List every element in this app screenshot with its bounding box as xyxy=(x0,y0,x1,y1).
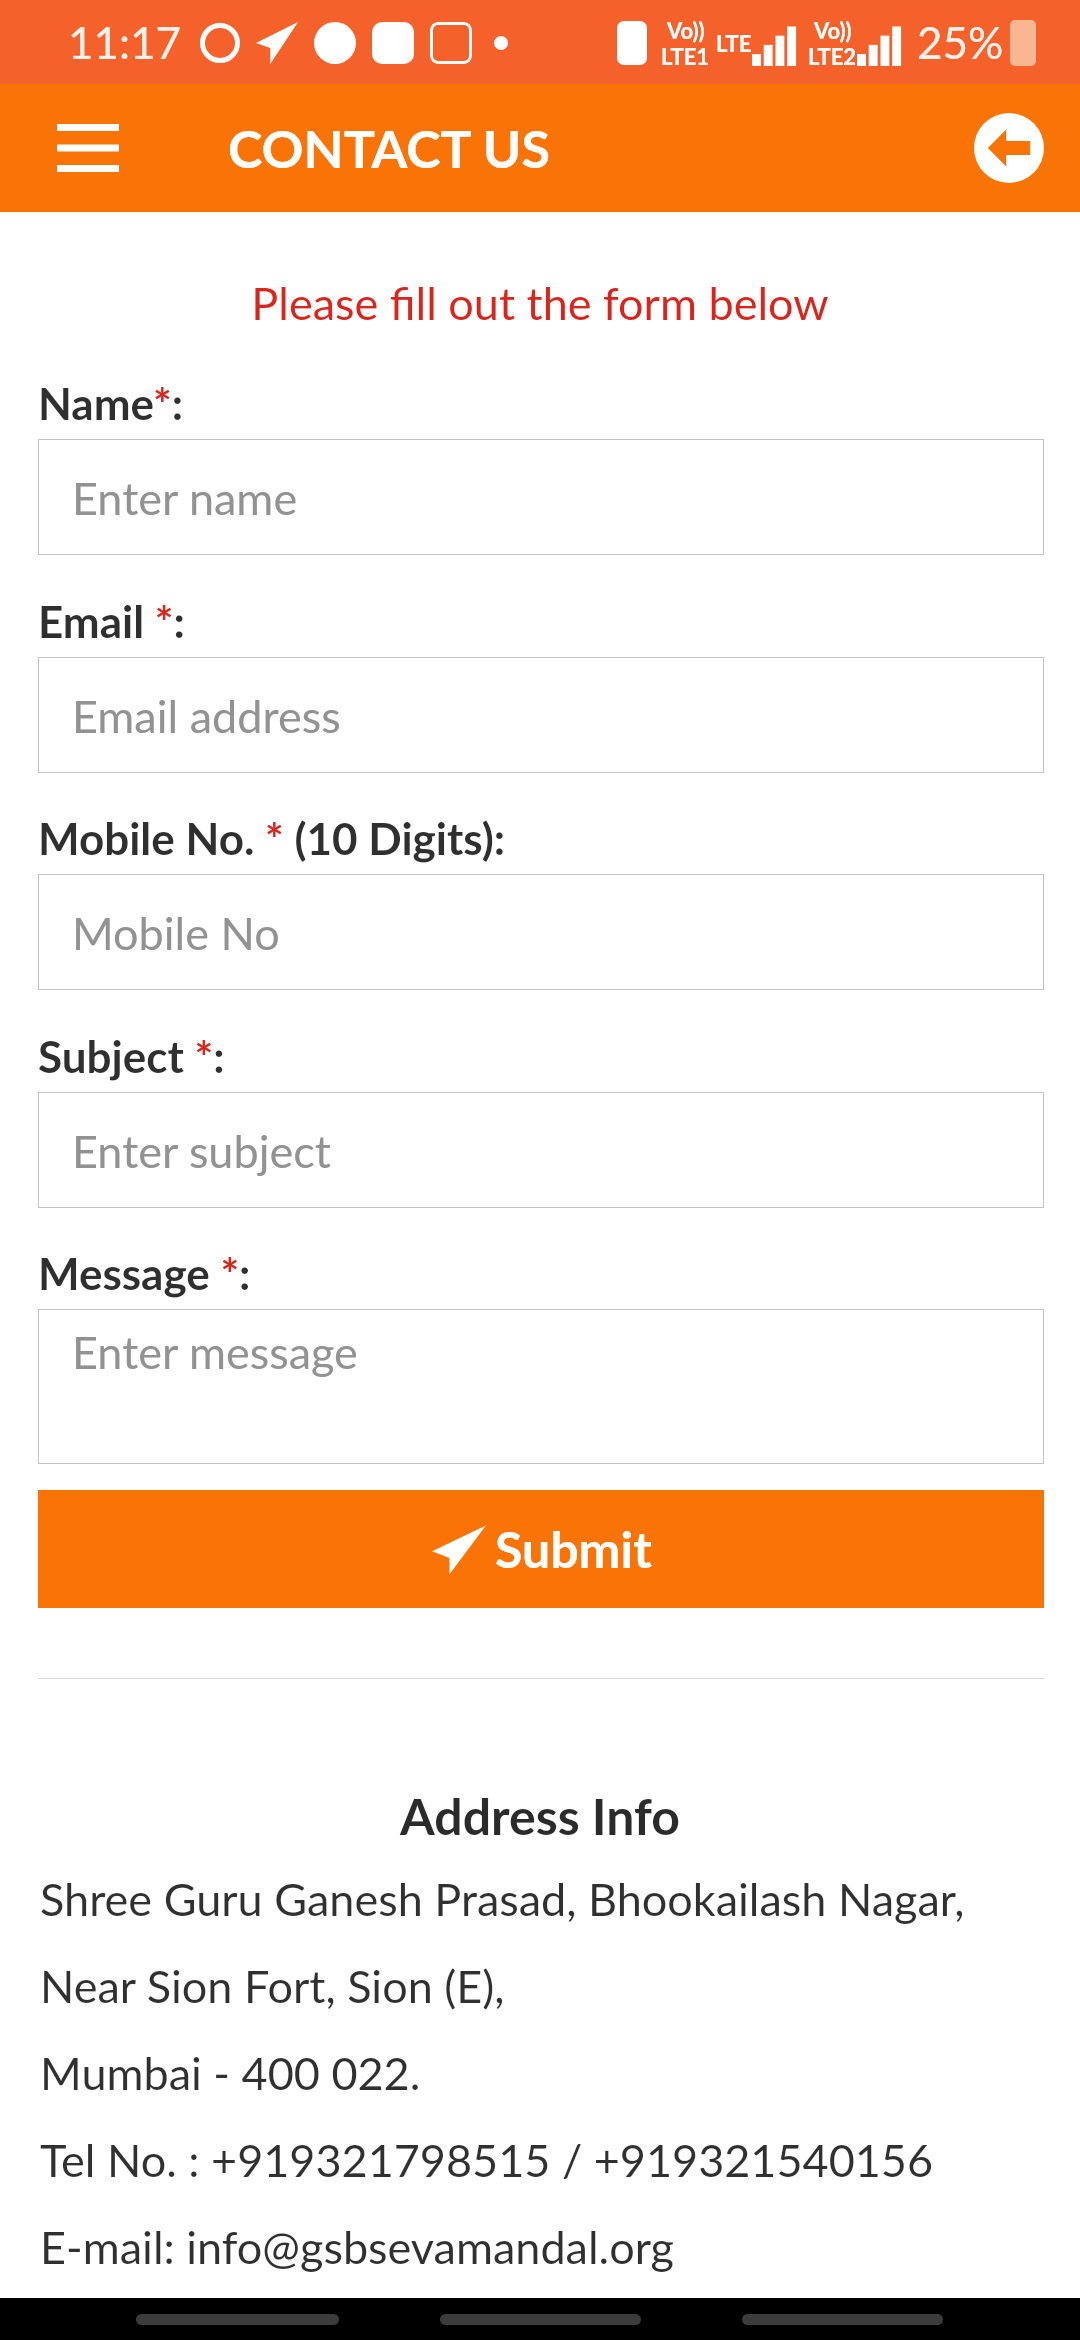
button[interactable]: Enter subject xyxy=(38,1092,1044,1208)
staticText: Name*: xyxy=(38,377,184,430)
staticText: Enter name xyxy=(72,471,298,525)
button[interactable]: Menu xyxy=(40,100,136,196)
staticText: Submit xyxy=(495,1519,652,1579)
staticText: 11:17 xyxy=(68,16,182,69)
button[interactable]: Enter message xyxy=(38,1309,1044,1464)
button[interactable]: Enter name xyxy=(38,439,1044,555)
staticText: Mumbai - 400 022. xyxy=(40,2046,1040,2100)
staticText: Mobile No xyxy=(72,906,280,960)
staticText: Vo)) xyxy=(667,17,705,43)
staticText: Near Sion Fort, Sion (E), xyxy=(40,1959,1040,2013)
staticText: Vo)) xyxy=(814,17,852,43)
staticText: LTE xyxy=(716,30,752,56)
button[interactable]: Email address xyxy=(38,657,1044,773)
staticText: E-mail: info@gsbsevamandal.org xyxy=(40,2220,1040,2274)
staticText: CONTACT US xyxy=(228,117,550,179)
staticText: Mobile No. * (10 Digits): xyxy=(38,812,506,865)
staticText: Email *: xyxy=(38,595,185,648)
staticText: Subject *: xyxy=(38,1030,225,1083)
staticText: Address Info xyxy=(0,1786,1080,1846)
button[interactable]: Mobile No xyxy=(38,874,1044,990)
staticText: LTE1 xyxy=(661,43,710,69)
staticText: Enter message xyxy=(72,1325,358,1379)
button[interactable]: Submit xyxy=(38,1490,1044,1608)
staticText: 25% xyxy=(917,16,1004,69)
staticText: Tel No. : +919321798515 / +919321540156 xyxy=(40,2133,1040,2187)
staticText: Message *: xyxy=(38,1247,251,1300)
button[interactable]: Back xyxy=(974,113,1044,183)
staticText: Email address xyxy=(72,689,341,743)
staticText: Enter subject xyxy=(72,1124,331,1178)
staticText: Shree Guru Ganesh Prasad, Bhookailash Na… xyxy=(40,1872,1040,1926)
staticText: LTE2 xyxy=(808,43,857,69)
staticText: Please fill out the form below xyxy=(0,276,1080,330)
